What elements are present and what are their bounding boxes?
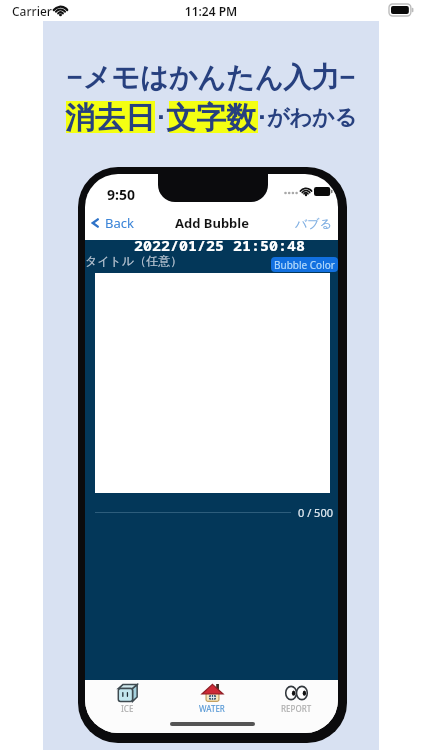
button[interactable]: バブる [291, 212, 335, 234]
button[interactable]: REPORT [254, 680, 338, 716]
staticText: 0 / 500 [298, 505, 333, 520]
staticText: ･ [155, 107, 166, 129]
staticText: Add Bubble [175, 214, 249, 232]
button[interactable]: ICE [85, 680, 170, 716]
staticText: がわかる [267, 104, 358, 132]
button[interactable]: WATER [170, 680, 254, 716]
staticText: Carrier [12, 3, 52, 19]
staticText: 9:50 [107, 185, 135, 204]
staticText: −メモはかんたん入力− [66, 57, 356, 95]
staticText: バブる [295, 216, 332, 231]
staticText: WATER [199, 703, 225, 714]
staticText: Bubble Color [274, 258, 335, 272]
button[interactable]: Back [88, 212, 134, 234]
staticText: 消去日 [65, 99, 155, 137]
staticText: ･ [256, 107, 267, 129]
staticText: REPORT [281, 703, 312, 714]
button[interactable]: Bubble Color [271, 257, 338, 272]
staticText: Back [105, 214, 134, 232]
staticText: 11:24 PM [0, 3, 422, 19]
staticText: 2022/01/25 21:50:48 [93, 235, 338, 255]
staticText: 文字数 [166, 99, 256, 137]
staticText: タイトル（任意） [85, 253, 183, 268]
staticText: ICE [121, 703, 134, 714]
